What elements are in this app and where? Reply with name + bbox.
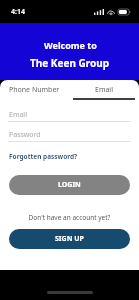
button[interactable]: LOGIN <box>9 175 130 195</box>
other: Wi-Fi <box>107 9 115 15</box>
staticText: Forgotten password? <box>9 152 78 161</box>
button[interactable]: Password <box>0 128 139 142</box>
staticText: Welcome to <box>44 39 97 51</box>
button[interactable]: Email <box>69 82 139 98</box>
staticText: Email <box>9 110 27 120</box>
staticText: LOGIN <box>58 180 81 190</box>
staticText: 4:14 <box>11 7 25 17</box>
staticText: Phone Number <box>9 85 60 95</box>
other: Battery <box>118 9 131 15</box>
button[interactable]: Forgotten password? <box>9 152 78 161</box>
staticText: The Keen Group <box>30 56 110 70</box>
staticText: Email <box>95 85 113 95</box>
staticText: SIGN UP <box>55 234 84 244</box>
other: Cellular signal <box>94 9 104 15</box>
button[interactable]: Phone Number <box>0 82 69 98</box>
staticText: Password <box>9 130 41 140</box>
staticText: Don't have an account yet? <box>0 213 139 222</box>
button[interactable]: SIGN UP <box>9 229 130 249</box>
button[interactable]: Email <box>0 108 139 122</box>
